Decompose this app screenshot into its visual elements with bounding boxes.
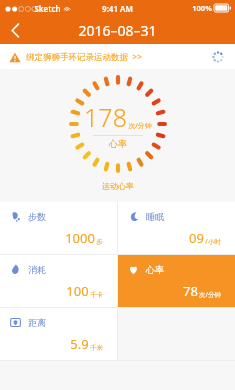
staticText: 178 <box>84 100 127 134</box>
button[interactable]: 消耗 <box>0 255 117 307</box>
staticText: 心率 <box>146 264 164 275</box>
staticText: 步 <box>96 238 103 246</box>
button[interactable]: 步数 <box>0 202 117 254</box>
staticText: 09 <box>189 229 204 247</box>
staticText: 78 <box>183 282 198 300</box>
staticText: 距离 <box>28 317 46 328</box>
staticText: 100 <box>66 282 89 300</box>
button[interactable]: 绑定狮狮手环记录运动数据 <box>0 44 235 69</box>
staticText: 2016–08–31 <box>78 21 157 40</box>
staticText: 千米 <box>90 344 103 352</box>
staticText: /小时 <box>205 237 221 246</box>
button[interactable]: 睡眠 <box>118 202 235 254</box>
button[interactable]: 距离 <box>0 308 117 360</box>
staticText: >> <box>132 51 142 63</box>
staticText: 9:41 AM <box>102 3 133 14</box>
staticText: 次/分钟 <box>199 290 221 299</box>
staticText: 绑定狮狮手环记录运动数据 <box>26 52 128 63</box>
staticText: 次/分钟 <box>128 121 152 131</box>
staticText: 5.9 <box>70 335 89 353</box>
button[interactable]: Syncing <box>211 50 225 64</box>
staticText: 心率 <box>109 138 127 149</box>
staticText: 消耗 <box>28 264 46 275</box>
staticText: 1000 <box>65 229 95 247</box>
staticText: 千卡 <box>90 291 103 299</box>
button[interactable]: 心率 <box>118 255 235 307</box>
staticText: Sketch <box>34 3 61 14</box>
button[interactable]: 178 <box>69 75 167 173</box>
staticText: 睡眠 <box>146 211 164 222</box>
staticText: 运动心率 <box>102 181 134 191</box>
staticText: 步数 <box>28 211 46 222</box>
button[interactable]: Back <box>0 16 30 44</box>
staticText: 100% <box>192 3 212 13</box>
